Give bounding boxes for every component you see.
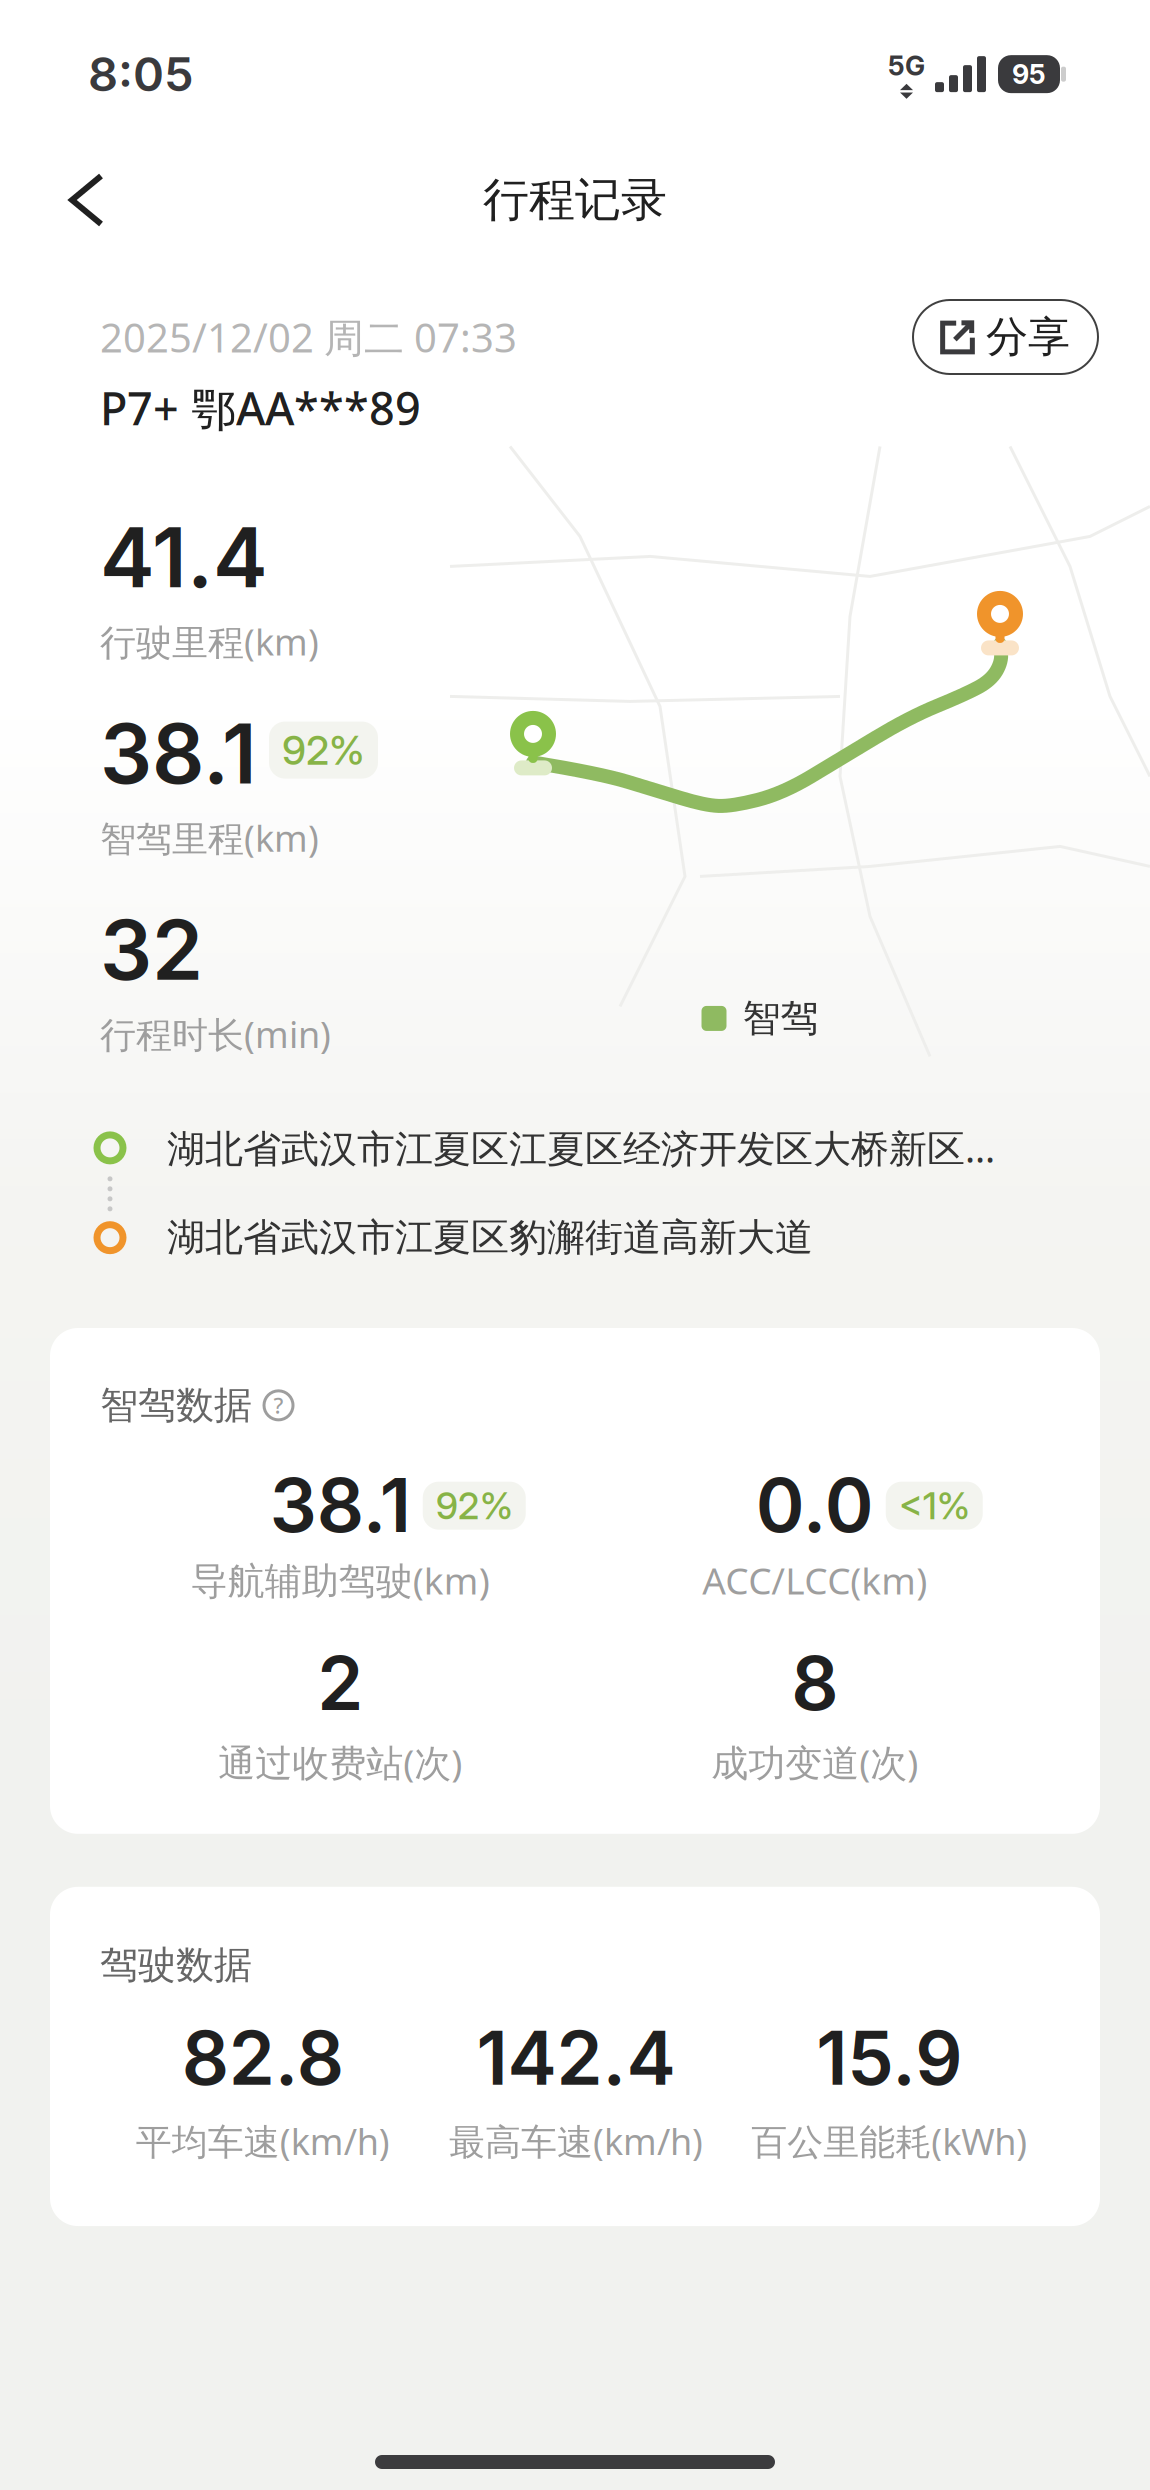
staticText: 行程记录 — [483, 168, 667, 232]
staticText: 41.4 — [100, 508, 268, 607]
staticText: 2 — [317, 1639, 363, 1727]
staticText: 湖北省武汉市江夏区江夏区经济开发区大桥新区... — [167, 1119, 995, 1176]
staticText: 成功变道(次) — [711, 1734, 918, 1790]
staticText: 95 — [1012, 58, 1046, 90]
staticText: 8 — [791, 1639, 838, 1727]
staticText: 38.1 — [270, 1461, 411, 1549]
staticText: P7+ 鄂AA***89 — [100, 374, 421, 441]
staticText: 0.0 — [756, 1461, 874, 1549]
staticText: 8:05 — [88, 46, 194, 102]
staticText: 142.4 — [476, 2013, 675, 2102]
staticText: 百公里能耗(kWh) — [751, 2114, 1027, 2168]
staticText: 15.9 — [816, 2013, 962, 2102]
staticText: 38.1 — [100, 705, 257, 803]
staticText: ? — [273, 1389, 283, 1422]
staticText: 导航辅助驾驶(km) — [191, 1552, 490, 1608]
staticText: 行程时长(min) — [100, 1007, 331, 1061]
staticText: 行驶里程(km) — [100, 615, 319, 668]
staticText: 92% — [436, 1483, 513, 1528]
staticText: 智驾 — [742, 992, 818, 1045]
staticText: ACC/LCC(km) — [702, 1552, 927, 1608]
staticText: 分享 — [986, 308, 1070, 366]
staticText: 驾驶数据 — [100, 1939, 252, 1991]
staticText: 湖北省武汉市江夏区豹澥街道高新大道 — [167, 1211, 813, 1264]
button[interactable] — [0, 176, 141, 224]
staticText: 92% — [282, 726, 365, 774]
staticText: <1% — [899, 1483, 970, 1528]
staticText: 5G — [888, 49, 925, 82]
staticText: 平均车速(km/h) — [136, 2114, 390, 2168]
button[interactable]: 分享 — [913, 300, 1098, 374]
staticText: 智驾数据 — [100, 1379, 252, 1432]
staticText: 32 — [100, 901, 203, 999]
staticText: 通过收费站(次) — [218, 1734, 462, 1790]
button[interactable]: ? — [264, 1389, 293, 1422]
staticText: 智驾里程(km) — [100, 811, 319, 865]
staticText: 82.8 — [182, 2013, 344, 2102]
staticText: 2025/12/02 周二 07:33 — [100, 307, 517, 367]
staticText: 最高车速(km/h) — [449, 2114, 703, 2168]
